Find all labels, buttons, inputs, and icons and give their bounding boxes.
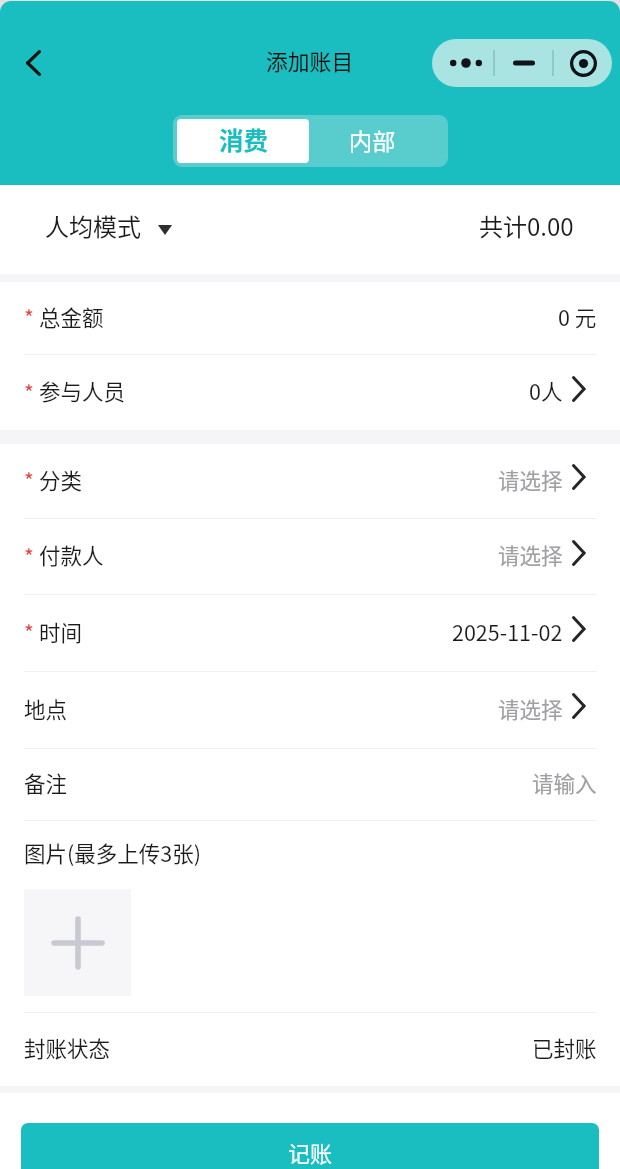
staticText: 请选择 bbox=[498, 693, 563, 724]
button[interactable]: 备注 bbox=[0, 749, 620, 820]
staticText: 记账 bbox=[288, 1136, 333, 1168]
staticText: * bbox=[24, 541, 39, 571]
staticText: 共计0.00 bbox=[479, 208, 574, 243]
staticText: 地点 bbox=[24, 693, 68, 724]
button[interactable]: More options bbox=[432, 39, 493, 87]
staticText: 图片(最多上传3张) bbox=[24, 837, 201, 868]
staticText: 参与人员 bbox=[39, 375, 126, 406]
staticText: 0人 bbox=[529, 375, 563, 406]
button[interactable]: 记账 bbox=[21, 1123, 599, 1169]
button[interactable]: 地点 bbox=[0, 672, 620, 748]
button[interactable]: * bbox=[0, 282, 620, 354]
button[interactable]: * bbox=[0, 519, 620, 594]
staticText: * bbox=[24, 377, 39, 407]
staticText: 时间 bbox=[39, 616, 83, 647]
staticText: 请选择 bbox=[498, 539, 563, 570]
button[interactable]: 内部 bbox=[309, 119, 444, 163]
staticText: 消费 bbox=[219, 122, 268, 157]
button[interactable]: 消费 bbox=[177, 119, 309, 163]
button[interactable]: Close bbox=[554, 39, 612, 87]
staticText: * bbox=[24, 617, 39, 647]
staticText: 付款人 bbox=[39, 539, 104, 570]
button[interactable]: 人均模式 bbox=[45, 208, 172, 243]
staticText: 0 元 bbox=[558, 301, 597, 332]
button[interactable]: Back bbox=[9, 39, 57, 87]
staticText: 分类 bbox=[39, 464, 83, 495]
staticText: 请输入 bbox=[532, 767, 597, 798]
staticText: 封账状态 bbox=[24, 1032, 111, 1063]
staticText: 请选择 bbox=[498, 464, 563, 495]
staticText: 内部 bbox=[349, 123, 396, 157]
staticText: * bbox=[24, 302, 39, 332]
staticText: 2025-11-02 bbox=[452, 616, 563, 647]
staticText: 添加账目 bbox=[266, 45, 354, 77]
staticText: 人均模式 bbox=[45, 208, 141, 243]
staticText: 总金额 bbox=[39, 301, 104, 332]
staticText: * bbox=[24, 465, 39, 495]
staticText: 备注 bbox=[24, 767, 68, 798]
button[interactable]: * bbox=[0, 355, 620, 430]
button[interactable]: * bbox=[0, 595, 620, 671]
button[interactable]: * bbox=[0, 444, 620, 518]
button[interactable]: 封账状态 bbox=[0, 1013, 620, 1086]
button[interactable]: Add photo bbox=[24, 889, 131, 996]
staticText: 已封账 bbox=[532, 1032, 597, 1063]
button[interactable]: Minimize bbox=[495, 39, 552, 87]
